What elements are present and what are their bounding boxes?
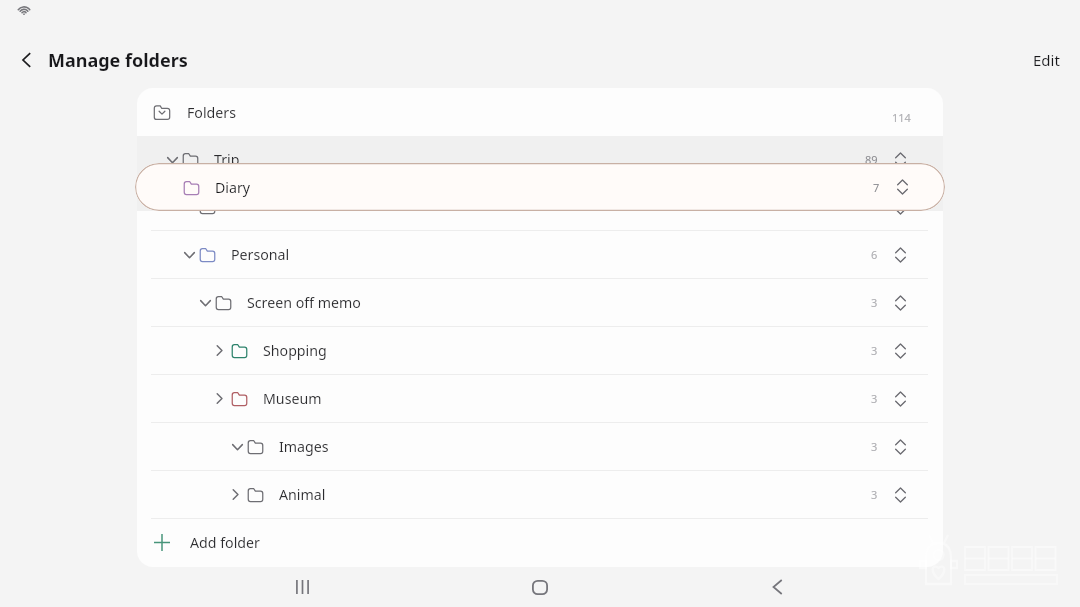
button[interactable]: Back [747,562,807,607]
button[interactable]: Recents [272,562,332,607]
button[interactable]: Animal [137,471,943,518]
staticText: 3 [871,439,878,454]
staticText: Add folder [190,533,260,552]
staticText: Images [279,437,329,456]
staticText: Museum [263,389,322,408]
other: Reorder Screen off memo [895,295,906,311]
button[interactable]: Folders [137,88,943,136]
other: Reorder Shopping [895,343,906,359]
staticText: Edit [1033,50,1060,70]
button[interactable]: Home [510,562,570,607]
button[interactable]: Screen off memo [137,279,943,326]
staticText: 6 [871,247,878,262]
staticText: Animal [279,485,326,504]
other: Reorder Images [895,439,906,455]
staticText: Folders [187,103,236,122]
staticText: Diary [215,178,251,197]
button[interactable]: Edit [1013,44,1080,76]
staticText: Personal [231,245,290,264]
other: Reorder [895,199,906,215]
button[interactable]: Personal [137,231,943,278]
button[interactable]: Museum [137,375,943,422]
staticText: Screen off memo [247,293,361,312]
staticText: Trip [214,150,240,169]
staticText: 3 [871,391,878,406]
button[interactable]: Shopping [137,327,943,374]
button[interactable]: Navigate up [5,38,49,82]
staticText: Shopping [263,341,327,360]
button[interactable]: Images [137,423,943,470]
staticText: 7 [873,180,880,195]
other: Reorder Personal [895,247,906,263]
staticText: 3 [871,343,878,358]
other: Reorder Museum [895,391,906,407]
button[interactable]: Trip [137,136,943,183]
button[interactable]: Reorder [137,183,943,230]
staticText: 114 [892,110,911,125]
button[interactable]: Add folder [137,519,943,566]
staticText: 3 [871,295,878,310]
staticText: 89 [865,152,878,167]
staticText: Manage folders [48,48,188,73]
staticText: 3 [871,487,878,502]
button[interactable]: Diary [135,163,945,211]
other: Reorder Animal [895,487,906,503]
other: Reorder Trip [895,152,906,168]
